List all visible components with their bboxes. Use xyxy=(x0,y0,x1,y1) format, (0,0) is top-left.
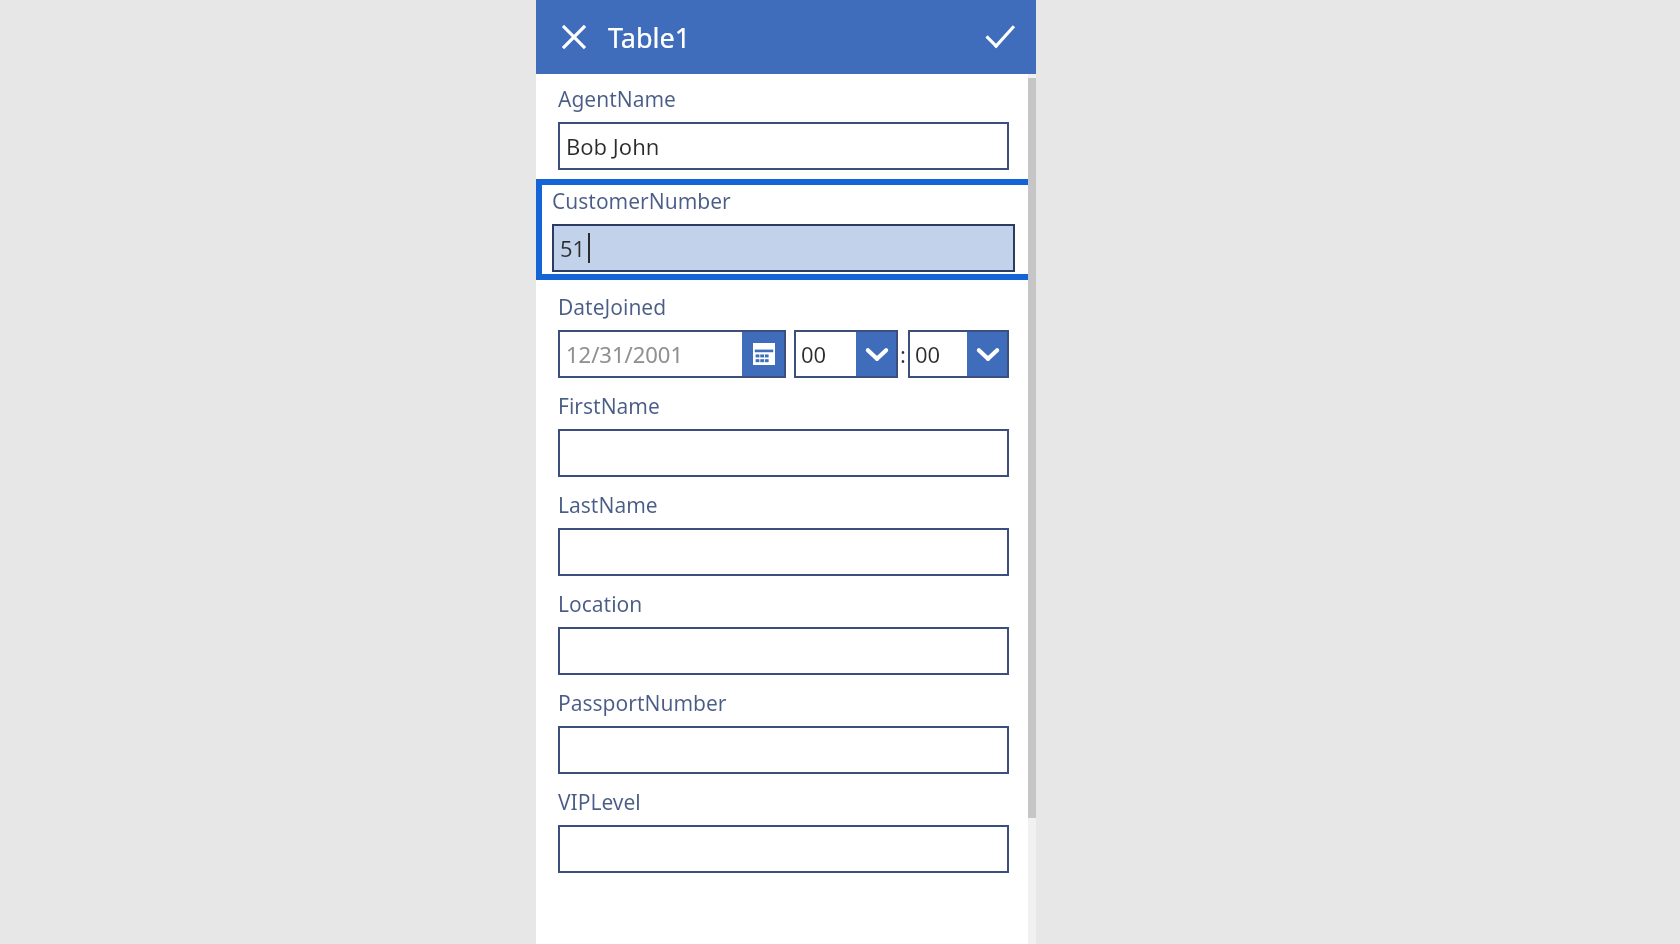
staticText: 12/31/2001 xyxy=(566,339,684,369)
staticText: AgentName xyxy=(558,85,676,114)
button[interactable]: AgentName xyxy=(536,74,1036,173)
staticText: 51 xyxy=(560,233,586,263)
staticText: Table1 xyxy=(608,19,691,56)
button[interactable]: Close xyxy=(550,13,598,61)
other: Open calendar xyxy=(742,330,786,378)
staticText: PassportNumber xyxy=(558,689,727,718)
staticText: 00 xyxy=(801,339,827,369)
button[interactable]: Location xyxy=(536,579,1036,678)
button[interactable]: DateJoined xyxy=(536,284,1036,381)
staticText: CustomerNumber xyxy=(552,187,731,216)
button[interactable]: 00 xyxy=(794,330,898,378)
button[interactable]: Confirm xyxy=(976,13,1024,61)
staticText: 00 xyxy=(915,339,941,369)
button[interactable]: 00 xyxy=(908,330,1009,378)
button[interactable]: VIPLevel xyxy=(536,777,1036,876)
button[interactable]: CustomerNumber xyxy=(536,179,1036,280)
other: Select minute xyxy=(967,330,1009,378)
button[interactable]: 12/31/2001 xyxy=(558,330,786,378)
button[interactable]: LastName xyxy=(536,480,1036,579)
staticText: Bob John xyxy=(566,131,660,161)
other: Select hour xyxy=(856,330,898,378)
staticText: FirstName xyxy=(558,392,660,421)
staticText: Location xyxy=(558,590,643,619)
staticText: LastName xyxy=(558,491,658,520)
button[interactable]: PassportNumber xyxy=(536,678,1036,777)
button[interactable]: FirstName xyxy=(536,381,1036,480)
staticText: DateJoined xyxy=(558,293,667,322)
staticText: VIPLevel xyxy=(558,788,641,817)
staticText: : xyxy=(900,339,906,369)
